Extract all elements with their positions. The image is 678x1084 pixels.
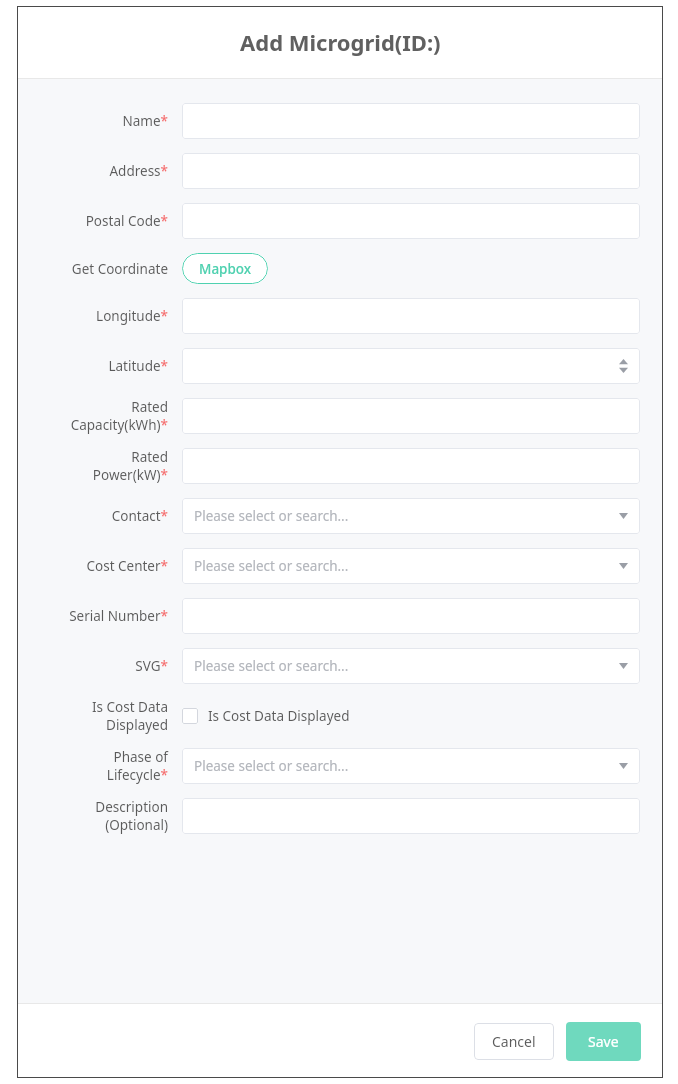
staticText: Serial Number* [69, 607, 168, 625]
button[interactable]: Is Cost Data Displayed [182, 698, 350, 734]
staticText: Name* [122, 112, 168, 130]
button[interactable] [182, 798, 640, 834]
staticText: SVG* [135, 657, 168, 675]
staticText: Rated Capacity(kWh)* [70, 398, 168, 434]
button[interactable] [182, 103, 640, 139]
button[interactable]: Mapbox [182, 253, 268, 284]
staticText: Address* [109, 162, 168, 180]
staticText: Is Cost Data Displayed [208, 707, 350, 725]
button[interactable]: Please select or search... [182, 748, 640, 784]
button[interactable]: Save [566, 1022, 641, 1061]
staticText: Save [588, 1032, 619, 1051]
staticText: Rated Power(kW)* [92, 448, 168, 484]
button[interactable] [182, 298, 640, 334]
button[interactable] [182, 398, 640, 434]
staticText: Cancel [492, 1032, 536, 1051]
staticText: Mapbox [199, 260, 252, 278]
staticText: Please select or search... [194, 757, 349, 775]
staticText: Is Cost Data Displayed [92, 698, 168, 734]
staticText: Get Coordinate [71, 260, 168, 278]
staticText: Description (Optional) [95, 798, 168, 834]
staticText: Cost Center* [86, 557, 168, 575]
button[interactable]: Please select or search... [182, 498, 640, 534]
staticText: Longitude* [96, 307, 168, 325]
button[interactable]: Please select or search... [182, 648, 640, 684]
staticText: Latitude* [108, 357, 168, 375]
staticText: Add Microgrid(ID:) [240, 27, 441, 57]
staticText: Phase of Lifecycle* [106, 748, 168, 784]
staticText: Please select or search... [194, 657, 349, 675]
staticText: Please select or search... [194, 557, 349, 575]
staticText: Please select or search... [194, 507, 349, 525]
staticText: Contact* [111, 507, 168, 525]
button[interactable]: Cancel [474, 1023, 554, 1060]
button[interactable]: Please select or search... [182, 548, 640, 584]
button[interactable] [182, 153, 640, 189]
button[interactable] [182, 203, 640, 239]
button[interactable] [182, 448, 640, 484]
button[interactable] [182, 598, 640, 634]
button[interactable] [182, 348, 640, 384]
staticText: Postal Code* [85, 212, 168, 230]
